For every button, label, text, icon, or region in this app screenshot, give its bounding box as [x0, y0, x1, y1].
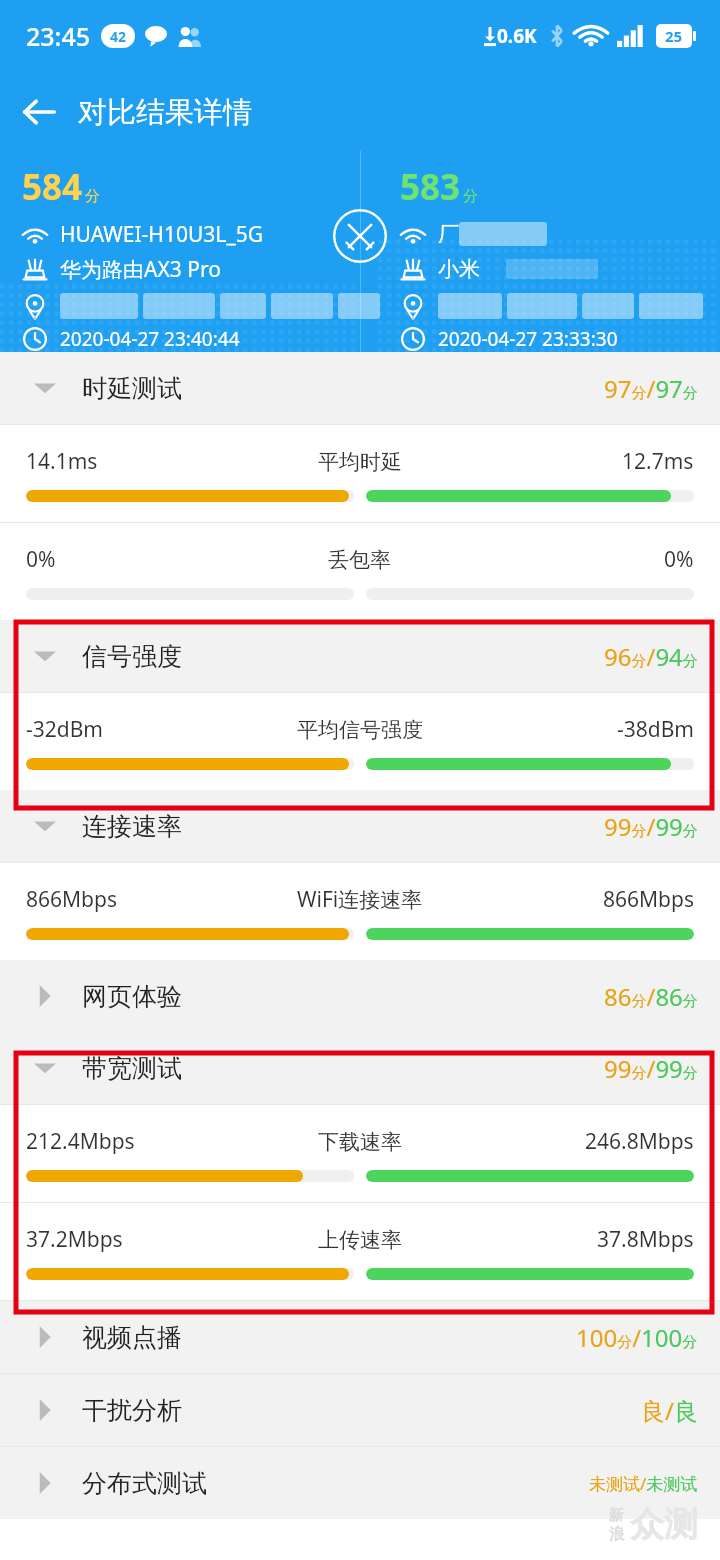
staticText: 99分/99分 — [604, 1052, 698, 1085]
staticText: HUAWEI-H10U3L_5G — [60, 220, 263, 249]
staticText: 良/良 — [641, 1394, 698, 1427]
staticText: 分布式测试 — [82, 1468, 207, 1499]
staticText: 新 — [609, 1506, 624, 1525]
staticText: 0.6K — [497, 23, 537, 49]
staticText: 下载速率 — [318, 1129, 402, 1155]
staticText: 97分/97分 — [604, 372, 698, 405]
staticText: 对比结果详情 — [78, 94, 252, 131]
staticText: 网页体验 — [82, 981, 182, 1012]
staticText: 丢包率 — [328, 547, 391, 573]
staticText: 平均信号强度 — [297, 717, 423, 743]
staticText: 小米 — [438, 256, 480, 282]
staticText: 带宽测试 — [82, 1053, 182, 1084]
staticText: 厂 — [438, 221, 459, 247]
staticText: WiFi连接速率 — [297, 885, 423, 914]
staticText: 信号强度 — [82, 641, 182, 672]
staticText: 华为路由AX3 Pro — [60, 255, 221, 284]
button[interactable]: 时延测试 — [0, 352, 720, 424]
staticText: 时延测试 — [82, 373, 182, 404]
staticText: 37.8Mbps — [597, 1225, 694, 1254]
staticText: 上传速率 — [318, 1227, 402, 1253]
button[interactable]: 信号强度 — [0, 620, 720, 692]
staticText: 分 — [463, 187, 478, 206]
staticText: 25 — [665, 26, 683, 46]
staticText: 99分/99分 — [604, 810, 698, 843]
staticText: 866Mbps — [603, 885, 694, 914]
staticText: 2020-04-27 23:40:44 — [60, 326, 240, 352]
staticText: 100分/100分 — [576, 1321, 698, 1354]
staticText: 96分/94分 — [604, 640, 698, 673]
staticText: 2020-04-27 23:33:30 — [438, 326, 618, 352]
staticText: 12.7ms — [622, 447, 694, 476]
staticText: 分 — [85, 187, 100, 206]
staticText: 未测试/未测试 — [589, 1472, 698, 1495]
staticText: 14.1ms — [26, 447, 98, 476]
staticText: 0% — [26, 545, 56, 574]
staticText: 干扰分析 — [82, 1395, 182, 1426]
button[interactable]: 干扰分析 — [0, 1374, 720, 1446]
button[interactable]: 网页体验 — [0, 960, 720, 1032]
staticText: 23:45 — [26, 19, 91, 53]
button[interactable]: Back — [0, 73, 78, 151]
staticText: 0% — [664, 545, 694, 574]
staticText: 平均时延 — [318, 449, 402, 475]
staticText: 浪 — [609, 1525, 624, 1544]
staticText: 42 — [110, 27, 127, 46]
staticText: 212.4Mbps — [26, 1127, 135, 1156]
button[interactable]: 视频点播 — [0, 1301, 720, 1373]
button[interactable]: 带宽测试 — [0, 1032, 720, 1104]
staticText: 866Mbps — [26, 885, 117, 914]
staticText: 视频点播 — [82, 1322, 182, 1353]
staticText: 584 — [22, 163, 83, 211]
staticText: 众测 — [630, 1503, 698, 1546]
staticText: 86分/86分 — [604, 980, 698, 1013]
staticText: -38dBm — [617, 715, 694, 744]
staticText: -32dBm — [26, 715, 103, 744]
button[interactable]: 分布式测试 — [0, 1447, 720, 1519]
staticText: 37.2Mbps — [26, 1225, 123, 1254]
staticText: 583 — [400, 163, 461, 211]
staticText: 246.8Mbps — [585, 1127, 694, 1156]
staticText: 连接速率 — [82, 811, 182, 842]
button[interactable]: 连接速率 — [0, 790, 720, 862]
